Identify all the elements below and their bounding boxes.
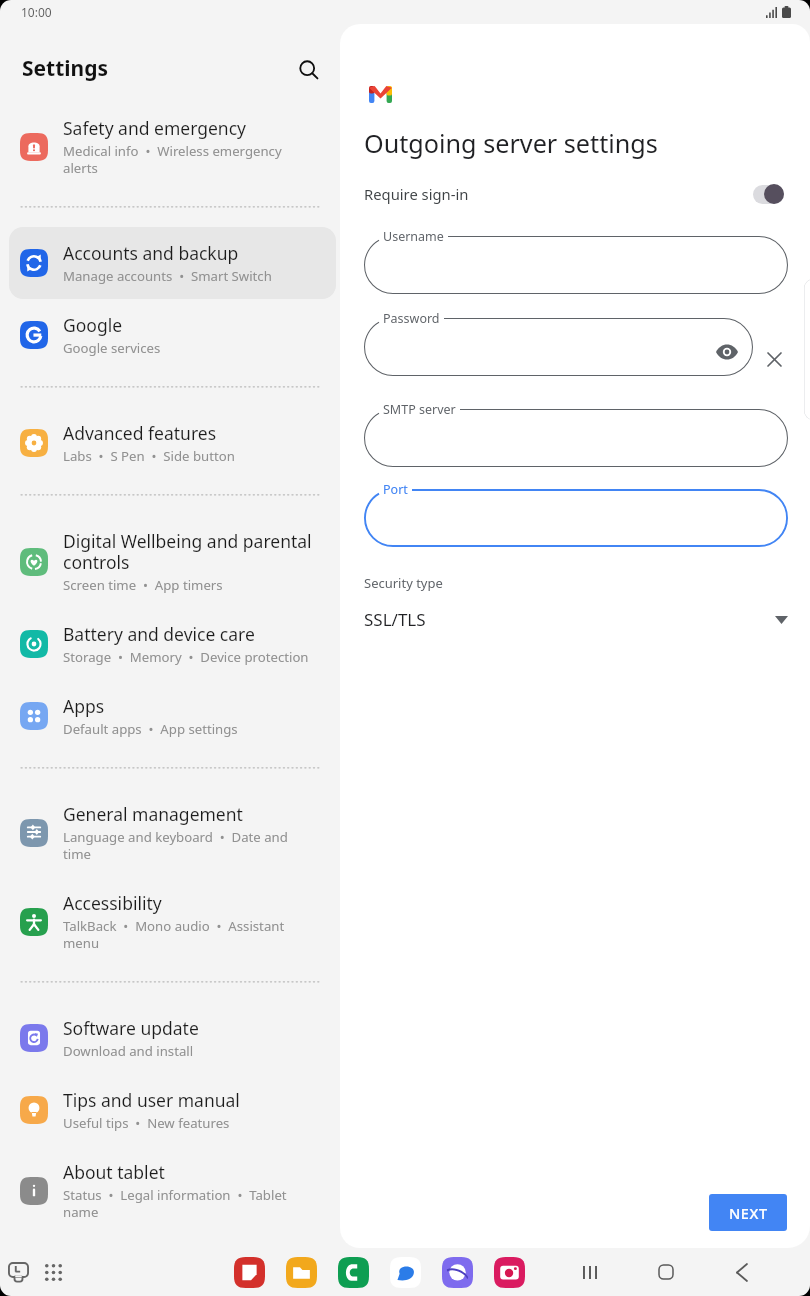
staticText: Screen time • App timers: [63, 576, 223, 594]
staticText: NEXT: [729, 1203, 768, 1223]
staticText: Download and install: [63, 1042, 194, 1060]
button[interactable]: [364, 409, 788, 467]
staticText: Digital Wellbeing and parental controls: [63, 529, 313, 574]
staticText: Google services: [63, 339, 161, 357]
button[interactable]: Advanced features: [9, 407, 336, 479]
button[interactable]: Clear: [757, 342, 792, 377]
button[interactable]: files: [286, 1257, 317, 1288]
button[interactable]: Search: [289, 50, 329, 90]
button[interactable]: Tips and user manual: [9, 1074, 336, 1146]
staticText: Battery and device care: [63, 622, 255, 646]
staticText: Medical info • Wireless emergency alerts: [63, 142, 313, 177]
staticText: Outgoing server settings: [364, 126, 658, 160]
button[interactable]: Software update: [9, 1002, 336, 1074]
button[interactable]: Show password: [364, 318, 753, 376]
staticText: About tablet: [63, 1160, 165, 1184]
staticText: Security type: [364, 574, 443, 592]
button[interactable]: notes: [234, 1257, 265, 1288]
staticText: 10:00: [21, 4, 52, 20]
button[interactable]: Accessibility: [9, 877, 336, 966]
button[interactable]: Safety and emergency: [9, 102, 336, 191]
staticText: General management: [63, 802, 243, 826]
button[interactable]: Require sign-in: [364, 182, 788, 206]
button[interactable]: Show password: [713, 338, 741, 366]
staticText: Software update: [63, 1016, 199, 1040]
button[interactable]: Digital Wellbeing and parental controls: [9, 515, 336, 608]
staticText: Labs • S Pen • Side button: [63, 447, 235, 465]
staticText: TalkBack • Mono audio • Assistant menu: [63, 917, 313, 952]
staticText: Storage • Memory • Device protection: [63, 648, 309, 666]
button[interactable]: Home: [651, 1257, 681, 1287]
button[interactable]: General management: [9, 788, 336, 877]
button[interactable]: Google: [9, 299, 336, 371]
button[interactable]: internet: [442, 1257, 473, 1288]
button[interactable]: messages: [390, 1257, 421, 1288]
staticText: Settings: [22, 54, 109, 83]
staticText: Accounts and backup: [63, 241, 239, 265]
staticText: Accessibility: [63, 891, 162, 915]
button[interactable]: Apps: [9, 680, 336, 752]
staticText: Status • Legal information • Tablet name: [63, 1186, 313, 1221]
staticText: Manage accounts • Smart Switch: [63, 267, 272, 285]
button[interactable]: camera: [494, 1257, 525, 1288]
button[interactable]: SSL/TLS: [364, 608, 788, 631]
staticText: Useful tips • New features: [63, 1114, 230, 1132]
button[interactable]: Apps: [36, 1255, 70, 1289]
button[interactable]: Battery and device care: [9, 608, 336, 680]
button[interactable]: [364, 236, 788, 294]
staticText: Safety and emergency: [63, 116, 246, 140]
button[interactable]: NEXT: [709, 1194, 787, 1231]
button[interactable]: phone: [338, 1257, 369, 1288]
staticText: Tips and user manual: [63, 1088, 240, 1112]
button[interactable]: Accounts and backup: [9, 227, 336, 299]
button[interactable]: Recent apps: [575, 1257, 605, 1287]
staticText: Language and keyboard • Date and time: [63, 828, 313, 863]
button[interactable]: Back: [727, 1257, 757, 1287]
staticText: Advanced features: [63, 421, 217, 445]
staticText: Apps: [63, 694, 105, 718]
staticText: Default apps • App settings: [63, 720, 238, 738]
staticText: Require sign-in: [364, 184, 469, 204]
staticText: Google: [63, 313, 123, 337]
button[interactable]: Recents: [1, 1255, 35, 1289]
button[interactable]: About tablet: [9, 1146, 336, 1235]
staticText: SSL/TLS: [364, 608, 426, 631]
button[interactable]: Require sign-in toggle: [752, 182, 788, 206]
button[interactable]: [364, 489, 788, 547]
